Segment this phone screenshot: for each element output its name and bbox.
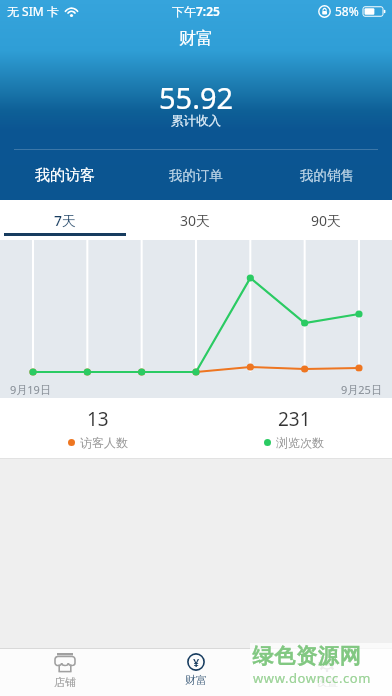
staticText: 9月25日 bbox=[341, 382, 382, 397]
staticText: 13 bbox=[87, 406, 109, 432]
staticText: 我的访客 bbox=[35, 166, 95, 185]
button[interactable]: 7天 bbox=[0, 200, 130, 240]
staticText: 7天 bbox=[54, 211, 77, 230]
button[interactable]: 我的销售 bbox=[261, 150, 392, 200]
staticText: 9月19日 bbox=[10, 382, 51, 397]
button[interactable]: ¥ bbox=[130, 649, 261, 696]
staticText: 90天 bbox=[311, 211, 342, 230]
button[interactable]: 90天 bbox=[261, 200, 392, 240]
button[interactable]: 我的访客 bbox=[0, 150, 130, 200]
button[interactable]: 店铺 bbox=[0, 649, 130, 696]
button[interactable]: 231 bbox=[196, 398, 392, 458]
staticText: 财富 bbox=[185, 673, 207, 687]
staticText: 我的订单 bbox=[169, 167, 223, 184]
staticText: 我的销售 bbox=[300, 167, 354, 184]
staticText: 下午7:25 bbox=[172, 3, 220, 19]
button[interactable]: 我的订单 bbox=[130, 150, 261, 200]
staticText: 30天 bbox=[180, 211, 211, 230]
staticText: ¥ bbox=[193, 655, 200, 670]
staticText: 绿色资源网 bbox=[252, 643, 361, 669]
button[interactable]: 设置 bbox=[261, 649, 392, 696]
staticText: 无 SIM 卡 bbox=[7, 3, 59, 19]
staticText: 财富 bbox=[179, 28, 213, 49]
button[interactable]: 13 bbox=[0, 398, 196, 458]
staticText: 累计收入 bbox=[171, 113, 221, 129]
staticText: 设置 bbox=[316, 675, 338, 689]
staticText: 231 bbox=[278, 406, 311, 432]
staticText: www.downcc.com bbox=[253, 669, 372, 687]
staticText: 店铺 bbox=[54, 675, 76, 689]
staticText: 55.92 bbox=[159, 78, 234, 117]
button[interactable]: 30天 bbox=[130, 200, 261, 240]
staticText: 访客人数 bbox=[80, 435, 128, 450]
staticText: 58% bbox=[335, 3, 359, 19]
staticText: 浏览次数 bbox=[276, 435, 324, 450]
